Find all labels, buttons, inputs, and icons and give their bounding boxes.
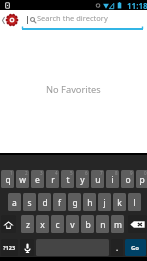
staticText: Go <box>131 244 140 252</box>
button[interactable]: u <box>91 170 104 188</box>
staticText: y <box>80 174 85 186</box>
staticText: No Favorites <box>46 83 101 96</box>
staticText: k <box>117 197 122 209</box>
staticText: w <box>19 174 26 186</box>
button[interactable]: . <box>111 239 123 256</box>
staticText: c <box>55 219 60 231</box>
staticText: l <box>133 197 136 209</box>
button[interactable]: y <box>76 170 89 188</box>
button[interactable]: k <box>113 193 126 211</box>
staticText: a <box>12 197 17 209</box>
staticText: 0 <box>144 170 147 176</box>
staticText: 9 <box>130 170 133 176</box>
staticText: u <box>95 174 101 186</box>
staticText: s <box>27 197 32 209</box>
staticText: b <box>85 219 91 231</box>
button[interactable]: o <box>121 170 134 188</box>
staticText: q <box>5 174 11 186</box>
staticText: i <box>111 174 114 186</box>
button[interactable]: m <box>111 215 124 233</box>
staticText: f <box>58 197 61 209</box>
staticText: x <box>40 219 45 231</box>
staticText: ?123 <box>3 244 16 251</box>
staticText: n <box>100 219 106 231</box>
staticText: j <box>103 197 106 209</box>
staticText: 11:18 <box>127 0 147 10</box>
button[interactable]: e <box>31 170 44 188</box>
button[interactable]: Voice input <box>20 239 34 256</box>
button[interactable]: x <box>36 215 49 233</box>
staticText: o <box>125 174 131 186</box>
staticText: r <box>51 174 55 186</box>
staticText: g <box>72 197 78 209</box>
button[interactable]: b <box>81 215 94 233</box>
button[interactable]: p <box>136 170 147 188</box>
button[interactable]: Navigate up <box>0 10 7 31</box>
button[interactable]: j <box>98 193 111 211</box>
button[interactable]: d <box>38 193 51 211</box>
staticText: 2 <box>25 170 28 176</box>
button[interactable]: r <box>46 170 59 188</box>
button[interactable]: i <box>106 170 119 188</box>
staticText: h <box>87 197 93 209</box>
staticText: z <box>26 219 30 231</box>
staticText: 7 <box>100 170 103 176</box>
button[interactable]: c <box>51 215 64 233</box>
staticText: e <box>35 174 40 186</box>
button[interactable]: Delete <box>128 215 147 233</box>
button[interactable]: z <box>21 215 34 233</box>
staticText: 4 <box>55 170 58 176</box>
button[interactable]: w <box>16 170 29 188</box>
staticText: 8 <box>115 170 118 176</box>
staticText: m <box>114 219 122 231</box>
button[interactable]: f <box>53 193 66 211</box>
staticText: d <box>42 197 48 209</box>
button[interactable]: a <box>8 193 21 211</box>
button[interactable]: Go <box>125 239 146 256</box>
button[interactable]: s <box>23 193 36 211</box>
button[interactable]: t <box>61 170 74 188</box>
button[interactable]: n <box>96 215 109 233</box>
button[interactable]: g <box>68 193 81 211</box>
button[interactable]: v <box>66 215 79 233</box>
staticText: 3 <box>40 170 43 176</box>
staticText: 6 <box>85 170 88 176</box>
staticText: p <box>139 174 145 186</box>
staticText: 1 <box>10 170 13 176</box>
button[interactable]: ?123 <box>1 239 18 256</box>
button[interactable]: App icon <box>6 14 18 26</box>
staticText: Search the directory <box>37 13 108 23</box>
button[interactable]: q <box>1 170 14 188</box>
staticText: . <box>116 242 119 253</box>
staticText: t <box>66 174 70 186</box>
button[interactable]: Shift <box>1 215 16 233</box>
staticText: v <box>70 219 75 231</box>
button[interactable]: h <box>83 193 96 211</box>
staticText: 5 <box>70 170 73 176</box>
button[interactable]: l <box>128 193 141 211</box>
